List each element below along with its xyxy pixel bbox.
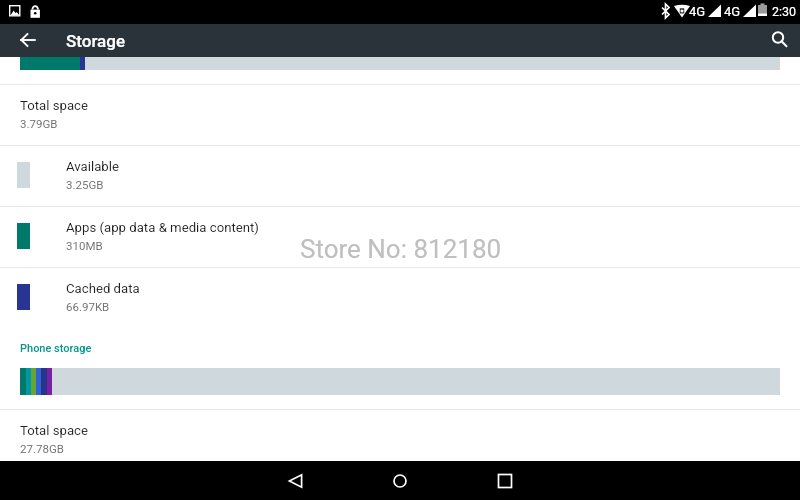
staticText: 3.79GB [20, 117, 58, 130]
button[interactable]: Apps (app data & media content) [0, 207, 800, 267]
staticText: Apps (app data & media content) [66, 220, 259, 235]
staticText: Total space [20, 423, 88, 438]
staticText: Cached data [66, 281, 140, 296]
staticText: 4G [724, 4, 741, 19]
button[interactable]: Available [0, 146, 800, 206]
button[interactable]: Home [376, 461, 424, 500]
button[interactable]: Back [14, 26, 42, 54]
staticText: Phone storage [20, 342, 92, 355]
button[interactable]: Total space [0, 85, 800, 145]
staticText: 310MB [66, 239, 103, 252]
staticText: Store No: 812180 [300, 234, 502, 264]
staticText: Storage [66, 31, 126, 51]
button[interactable]: Search [766, 26, 794, 54]
staticText: 66.97KB [66, 300, 110, 313]
staticText: 27.78GB [20, 442, 64, 455]
staticText: 4G [689, 4, 706, 19]
staticText: 3.25GB [66, 178, 104, 191]
button[interactable]: Total space [0, 410, 800, 470]
staticText: Total space [20, 98, 88, 113]
button[interactable]: Back [272, 461, 320, 500]
staticText: 2:30 [772, 4, 797, 19]
button[interactable]: Cached data [0, 268, 800, 328]
button[interactable]: Recent apps [481, 461, 529, 500]
staticText: Available [66, 159, 119, 174]
